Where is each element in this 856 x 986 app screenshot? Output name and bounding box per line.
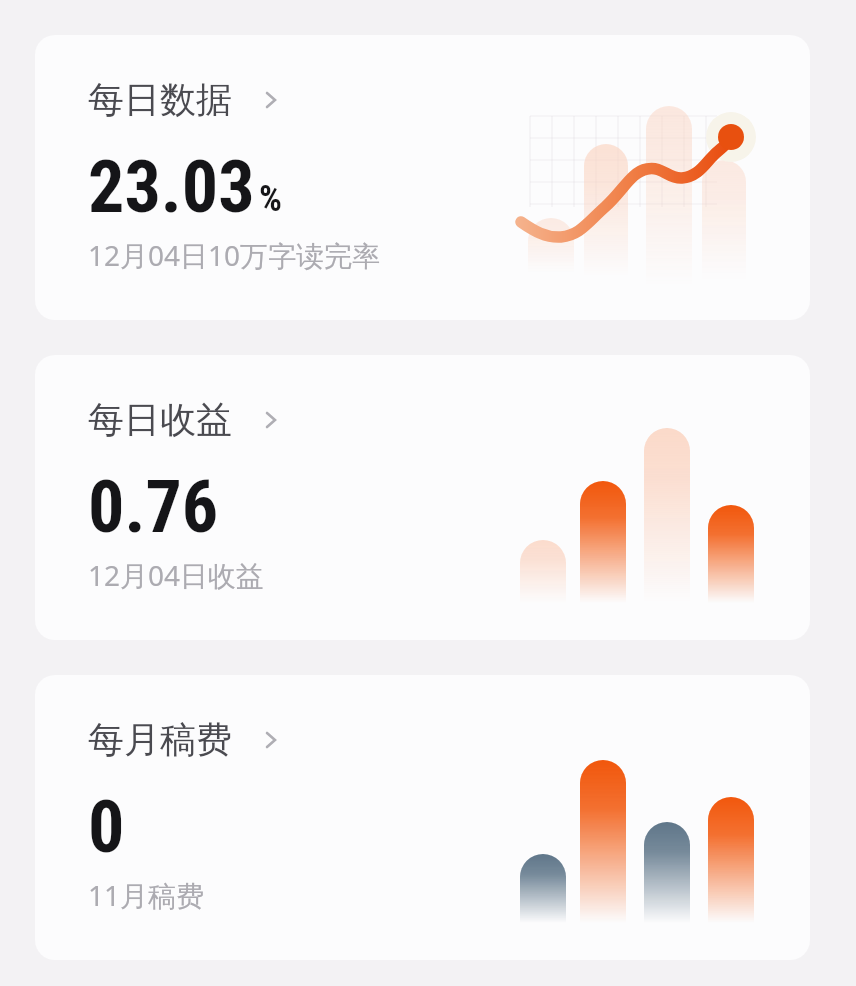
button[interactable]: 每月稿费	[35, 675, 810, 960]
staticText: 每日数据	[88, 77, 232, 122]
staticText: 11月稿费	[88, 876, 205, 914]
staticText: 0.76	[88, 465, 219, 549]
staticText: %	[259, 178, 282, 220]
staticText: 每日收益	[88, 397, 232, 442]
staticText: 12月04日收益	[88, 556, 265, 594]
staticText: 23.03	[88, 145, 255, 229]
staticText: 每月稿费	[88, 717, 232, 762]
button[interactable]: 每日收益	[35, 355, 810, 640]
staticText: 0	[88, 785, 125, 869]
button[interactable]: 每日数据	[35, 35, 810, 320]
staticText: 12月04日10万字读完率	[88, 236, 381, 274]
